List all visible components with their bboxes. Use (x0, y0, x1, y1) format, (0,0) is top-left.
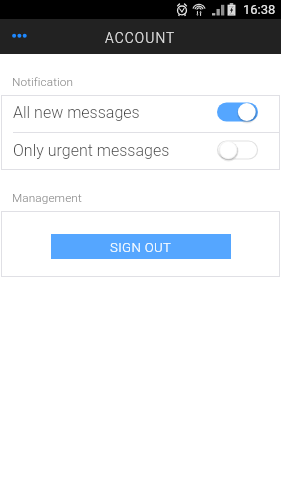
staticText: Management (12, 191, 82, 205)
button[interactable]: All new messages (1, 95, 280, 132)
staticText: Only urgent messages (13, 141, 170, 160)
staticText: All new messages (13, 103, 140, 122)
button[interactable]: More options (0, 19, 36, 54)
button[interactable]: Only urgent messages (1, 133, 280, 170)
staticText: 16:38 (243, 2, 276, 17)
staticText: SIGN OUT (110, 240, 172, 255)
staticText: Notification (12, 75, 74, 89)
staticText: ACCOUNT (105, 30, 176, 46)
button[interactable]: SIGN OUT (51, 234, 231, 259)
